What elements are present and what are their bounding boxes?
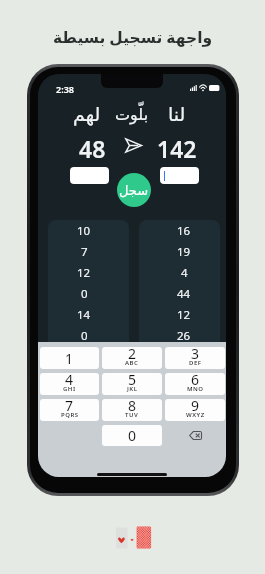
button[interactable]: Backspace	[165, 425, 225, 446]
staticText: JKL	[127, 385, 138, 393]
button[interactable]: 0	[64, 283, 104, 304]
button[interactable]: 7	[40, 399, 99, 421]
staticText: 1	[65, 349, 74, 368]
button[interactable]: 6	[165, 373, 225, 395]
staticText: 12	[177, 307, 191, 323]
staticText: 0	[81, 286, 88, 302]
staticText: 8	[128, 399, 137, 415]
staticText: 14	[77, 307, 91, 323]
button[interactable]: 44	[164, 283, 204, 304]
button[interactable]: 3	[165, 347, 225, 369]
staticText: TUV	[125, 411, 139, 419]
staticText: لنا	[168, 103, 186, 125]
staticText: DEF	[189, 359, 202, 367]
staticText: MNO	[187, 385, 204, 393]
button[interactable]: 0	[102, 425, 162, 446]
staticText: 0	[128, 426, 137, 445]
button[interactable]	[70, 167, 109, 184]
staticText: 3	[191, 347, 200, 363]
button[interactable]: 19	[164, 241, 204, 262]
button[interactable]: 10	[64, 220, 104, 241]
button[interactable]: 12	[164, 304, 204, 325]
staticText: 2	[128, 347, 137, 363]
staticText: واجهة تسجيل بسيطة	[0, 26, 265, 47]
staticText: PQRS	[61, 411, 79, 419]
staticText: 2:38	[56, 83, 74, 95]
staticText: 7	[65, 399, 74, 415]
staticText: 4	[181, 265, 188, 281]
button[interactable]: 0	[64, 325, 104, 346]
button[interactable]: 2	[102, 347, 162, 369]
staticText: 6	[191, 373, 200, 389]
button[interactable]: 16	[164, 220, 204, 241]
button[interactable]: 5	[102, 373, 162, 395]
staticText: 26	[177, 328, 191, 344]
staticText: ABC	[125, 359, 139, 367]
staticText: 10	[77, 223, 91, 239]
button[interactable]: 7	[64, 241, 104, 262]
button[interactable]: 4	[164, 262, 204, 283]
button[interactable]: سجل	[117, 173, 151, 207]
staticText: WXYZ	[186, 411, 205, 419]
staticText: 19	[177, 244, 191, 260]
staticText: 7	[81, 244, 88, 260]
button[interactable]: 26	[164, 325, 204, 346]
button[interactable]: 12	[64, 262, 104, 283]
staticText: 48	[79, 133, 106, 164]
button[interactable]: 1	[40, 347, 99, 369]
staticText: GHI	[63, 385, 76, 393]
staticText: 0	[81, 328, 88, 344]
staticText: 4	[65, 373, 74, 389]
staticText: 142	[157, 133, 197, 164]
staticText: لهم	[73, 103, 101, 125]
staticText: بلّوت	[115, 105, 149, 124]
button[interactable]: 9	[165, 399, 225, 421]
button[interactable]: 8	[102, 399, 162, 421]
button[interactable]	[160, 167, 199, 184]
staticText: 12	[77, 265, 91, 281]
staticText: 16	[177, 223, 191, 239]
button[interactable]: 14	[64, 304, 104, 325]
staticText: 9	[191, 399, 200, 415]
button[interactable]: 4	[40, 373, 99, 395]
staticText: سجل	[119, 183, 149, 198]
staticText: 44	[177, 286, 191, 302]
staticText: 5	[128, 373, 137, 389]
button[interactable]: Send	[123, 136, 143, 154]
